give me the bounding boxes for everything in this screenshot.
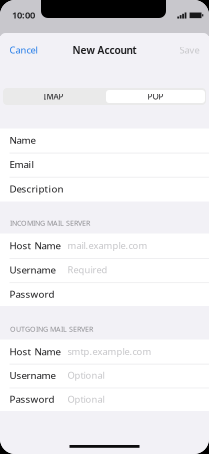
button[interactable]: Username [0,363,209,387]
staticText: 10:00 [12,9,35,21]
staticText: POP [147,91,163,102]
staticText: Description [9,182,63,195]
staticText: Required [67,263,107,276]
staticText: New Account [72,43,136,57]
staticText: Save [179,44,199,56]
staticText: INCOMING MAIL SERVER [10,218,90,228]
button[interactable]: Host Name [0,233,209,257]
staticText: IMAP [43,91,63,102]
staticText: Optional [67,369,104,381]
staticText: smtp.example.com [67,345,151,358]
staticText: Name [9,133,35,147]
button[interactable]: POP [105,88,206,105]
staticText: Username [9,369,55,382]
staticText: Host Name [9,345,60,358]
staticText: Optional [67,393,104,405]
button[interactable]: Save [149,41,199,59]
button[interactable]: Description [0,176,209,201]
staticText: mail.example.com [67,239,147,252]
button[interactable]: Email [0,152,209,176]
button[interactable]: Host Name [0,339,209,363]
button[interactable]: Password [0,387,209,411]
staticText: Cancel [9,44,37,56]
staticText: Password [9,392,54,406]
staticText: Host Name [9,239,60,252]
staticText: Username [9,263,55,276]
staticText: Password [9,287,54,300]
button[interactable]: Cancel [0,41,62,59]
button[interactable]: IMAP [3,88,104,105]
staticText: OUTGOING MAIL SERVER [10,324,93,334]
button[interactable]: Name [0,128,209,152]
button[interactable]: Username [0,257,209,282]
button[interactable]: Password [0,282,209,306]
staticText: Email [9,158,34,171]
